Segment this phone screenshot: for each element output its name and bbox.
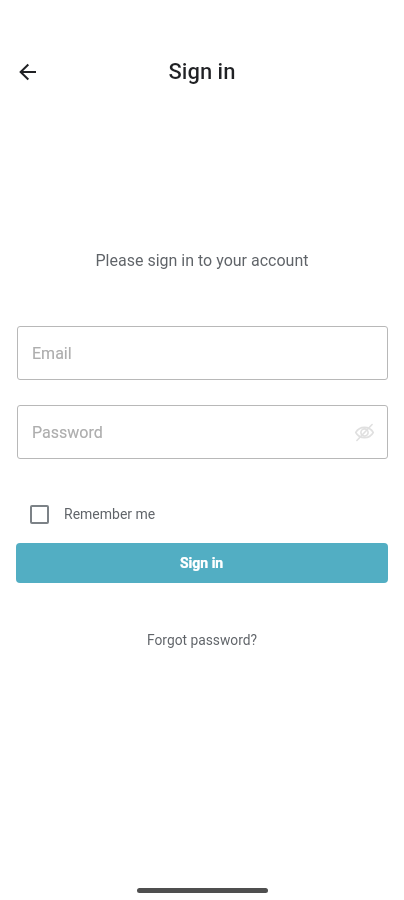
button[interactable]: Password bbox=[17, 405, 388, 459]
button[interactable]: Back bbox=[8, 52, 48, 92]
button[interactable]: Show password bbox=[350, 418, 378, 446]
button[interactable]: Email bbox=[17, 326, 388, 380]
button[interactable]: Forgot password? bbox=[137, 624, 268, 656]
staticText: Please sign in to your account bbox=[0, 251, 404, 270]
button[interactable]: Sign in bbox=[16, 543, 388, 583]
button[interactable]: Remember me bbox=[30, 499, 156, 529]
staticText: Sign in bbox=[180, 555, 224, 571]
staticText: Email bbox=[32, 344, 72, 363]
staticText: Remember me bbox=[64, 506, 156, 522]
staticText: Forgot password? bbox=[147, 632, 258, 648]
staticText: Sign in bbox=[0, 59, 404, 85]
staticText: Password bbox=[32, 423, 103, 442]
